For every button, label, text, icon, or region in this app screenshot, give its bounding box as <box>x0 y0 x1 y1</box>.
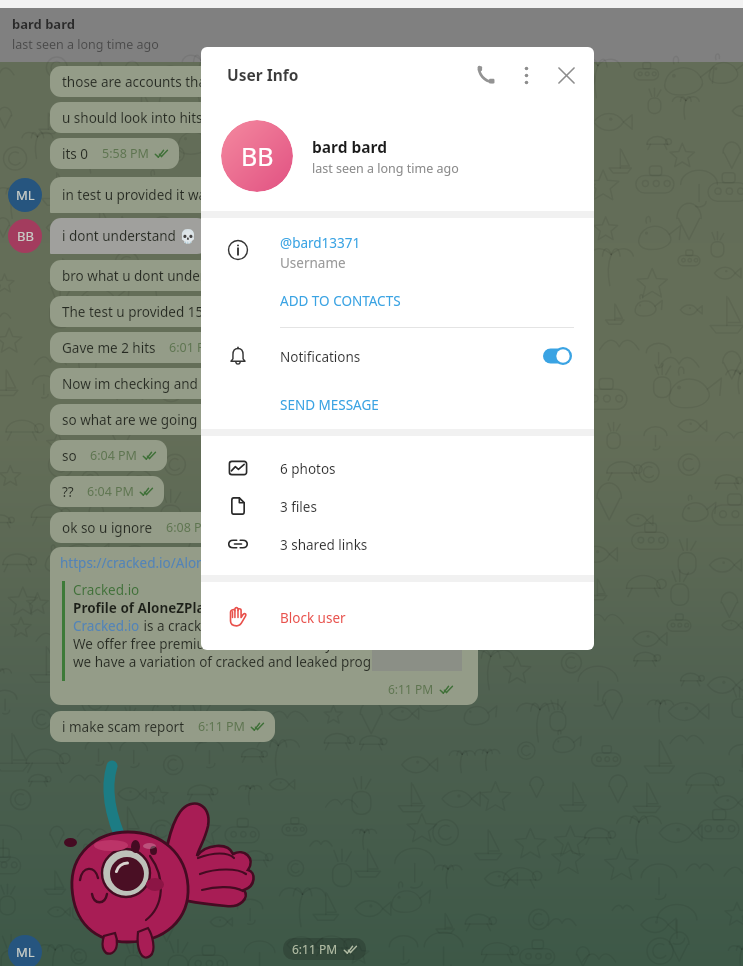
button[interactable]: so <box>50 440 167 471</box>
staticText: so what are we going to do <box>62 411 234 429</box>
staticText: ok so u ignore <box>62 519 153 537</box>
button[interactable]: 6 photos <box>201 449 594 487</box>
staticText: so <box>62 447 77 465</box>
staticText: 6:11 PM <box>388 681 434 697</box>
staticText: is a cracking forum and community. <box>140 617 371 635</box>
staticText: bard bard <box>12 15 75 33</box>
staticText: ML <box>16 186 35 204</box>
staticText: 6:11 PM <box>292 941 338 957</box>
button[interactable]: SEND MESSAGE <box>201 385 594 423</box>
staticText: its 0 <box>62 145 89 163</box>
staticText: ?? <box>62 483 74 501</box>
staticText: 5:58 PM <box>102 145 149 162</box>
staticText: 3 files <box>280 498 317 516</box>
staticText: bro what u dont understand <box>62 267 241 285</box>
button[interactable]: those are accounts that you can pick fro… <box>50 66 338 97</box>
staticText: 6:04 PM <box>90 447 137 464</box>
staticText: The test u provided 150 accounts <box>62 303 272 321</box>
button[interactable]: so what are we going to do <box>50 404 245 435</box>
button[interactable]: The test u provided 150 accounts <box>50 296 283 327</box>
button[interactable]: ok so u ignore <box>50 512 243 543</box>
staticText: BB <box>241 139 274 173</box>
button[interactable]: u should look into hits <box>50 102 214 133</box>
button[interactable]: its 0 <box>50 138 179 169</box>
staticText: i make scam report <box>62 718 185 736</box>
staticText: 6 photos <box>280 460 336 478</box>
button[interactable]: More options <box>506 55 546 95</box>
staticText: Profile of AloneZPlayer <box>73 599 227 617</box>
staticText: i dont understand 💀 <box>62 227 197 245</box>
staticText: we have a variation of cracked and leake… <box>73 653 386 671</box>
staticText: Now im checking and no hits <box>62 375 245 393</box>
button[interactable]: ADD TO CONTACTS <box>201 283 594 319</box>
staticText: 3 shared links <box>280 536 368 554</box>
button[interactable]: bard bard <box>0 8 743 62</box>
button[interactable]: Gave me 2 hits <box>50 332 246 363</box>
button[interactable]: Call <box>466 55 506 95</box>
button[interactable]: ?? <box>50 476 164 507</box>
staticText: User Info <box>227 64 299 85</box>
button[interactable]: Notifications <box>201 334 594 378</box>
staticText: last seen a long time ago <box>12 36 159 53</box>
staticText: https://cracked.io/AloneZPlayer <box>60 554 260 572</box>
staticText: ADD TO CONTACTS <box>280 292 401 310</box>
staticText: ML <box>16 943 35 961</box>
staticText: bard bard <box>312 136 388 157</box>
staticText: last seen a long time ago <box>312 160 459 177</box>
button[interactable]: Block user <box>201 594 594 640</box>
staticText: those are accounts that you can pick fro… <box>62 73 327 91</box>
staticText: SEND MESSAGE <box>280 396 379 414</box>
button[interactable]: @bard13371 <box>201 225 594 275</box>
staticText: Gave me 2 hits <box>62 339 156 357</box>
button[interactable]: Now im checking and no hits <box>50 368 256 399</box>
button[interactable]: i dont understand 💀 <box>50 218 208 254</box>
button[interactable]: in test u provided it was 0 <box>50 177 235 213</box>
staticText: in test u provided it was 0 <box>62 186 224 204</box>
staticText: Block user <box>280 609 346 627</box>
staticText: BB <box>17 227 34 245</box>
button[interactable]: bro what u dont understand <box>50 260 252 291</box>
staticText: 6:04 PM <box>87 483 134 500</box>
staticText: Username <box>280 254 346 272</box>
staticText: Cracked.io <box>73 581 140 599</box>
button[interactable]: Close <box>546 55 586 95</box>
button[interactable]: 3 files <box>201 487 594 525</box>
staticText: 6:01 PM <box>169 339 216 356</box>
button[interactable]: 3 shared links <box>201 525 594 563</box>
button[interactable]: https://cracked.io/AloneZPlayer <box>50 547 478 705</box>
staticText: u should look into hits <box>62 109 203 127</box>
staticText: Cracked.io <box>73 617 140 635</box>
staticText: We offer free premium accounts to everyo… <box>73 635 384 653</box>
staticText: @bard13371 <box>280 234 361 252</box>
staticText: 6:08 PM <box>166 519 213 536</box>
staticText: Notifications <box>280 348 361 366</box>
staticText: 6:11 PM <box>198 718 245 735</box>
button[interactable]: i make scam report <box>50 711 275 742</box>
